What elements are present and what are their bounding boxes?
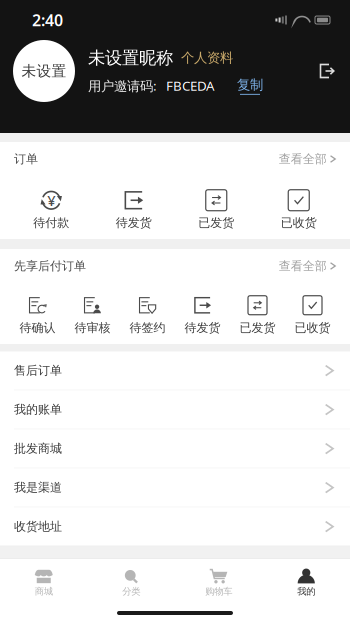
button[interactable]: 收货地址 xyxy=(0,507,350,546)
button[interactable]: 我的账单 xyxy=(0,390,350,429)
staticText: 待确认 xyxy=(19,320,55,335)
staticText: 我是渠道 xyxy=(14,480,62,495)
staticText: 待付款 xyxy=(33,215,69,230)
button[interactable]: 售后订单 xyxy=(0,351,350,390)
button[interactable]: 头像 xyxy=(13,40,75,102)
staticText: 商城 xyxy=(35,586,53,597)
staticText: 查看全部 xyxy=(279,259,327,273)
staticText: 待发货 xyxy=(116,215,152,230)
button[interactable]: 查看全部 xyxy=(279,259,336,273)
staticText: 查看全部 xyxy=(279,152,327,166)
staticText: 2:40 xyxy=(32,9,63,31)
button[interactable]: 退出登录 xyxy=(314,58,340,84)
button[interactable]: 已收货 xyxy=(257,189,340,230)
staticText: 售后订单 xyxy=(14,363,62,378)
button[interactable]: 已收货 xyxy=(285,294,340,335)
staticText: 已发货 xyxy=(198,215,234,230)
staticText: 收货地址 xyxy=(14,519,62,534)
staticText: 用户邀请码: xyxy=(88,77,157,94)
staticText: 复制 xyxy=(237,76,263,93)
button[interactable]: ¥ xyxy=(10,189,92,230)
staticText: 批发商城 xyxy=(14,441,62,456)
staticText: 未设置 xyxy=(21,62,66,80)
staticText: 待发货 xyxy=(184,320,220,335)
button[interactable]: 待确认 xyxy=(10,294,65,335)
staticText: 我的账单 xyxy=(14,402,62,417)
staticText: 个人资料 xyxy=(181,50,233,66)
staticText: 我的 xyxy=(297,586,315,597)
button[interactable]: 已发货 xyxy=(230,294,285,335)
button[interactable]: 商城 xyxy=(0,568,87,597)
button[interactable]: 查看全部 xyxy=(279,152,336,166)
staticText: 已收货 xyxy=(281,215,317,230)
staticText: 先享后付订单 xyxy=(14,259,86,273)
button[interactable]: 复制 xyxy=(237,76,263,95)
staticText: 分类 xyxy=(122,586,140,597)
staticText: 待审核 xyxy=(74,320,110,335)
button[interactable]: 待发货 xyxy=(175,294,230,335)
button[interactable]: 我的 xyxy=(262,568,350,597)
staticText: 订单 xyxy=(14,152,38,166)
button[interactable]: 待审核 xyxy=(65,294,120,335)
button[interactable]: 待发货 xyxy=(92,189,175,230)
staticText: 购物车 xyxy=(205,586,232,597)
staticText: 已收货 xyxy=(294,320,330,335)
staticText: 待签约 xyxy=(129,320,165,335)
button[interactable]: 个人资料 xyxy=(181,50,233,66)
staticText: FBCEDA xyxy=(166,77,215,94)
button[interactable]: 分类 xyxy=(87,568,175,597)
button[interactable]: 待签约 xyxy=(120,294,175,335)
staticText: 未设置昵称 xyxy=(88,47,173,68)
button[interactable]: 购物车 xyxy=(175,568,262,597)
staticText: ¥ xyxy=(47,190,55,210)
staticText: 已发货 xyxy=(239,320,275,335)
button[interactable]: 批发商城 xyxy=(0,429,350,468)
button[interactable]: 已发货 xyxy=(175,189,257,230)
button[interactable]: 我是渠道 xyxy=(0,468,350,507)
